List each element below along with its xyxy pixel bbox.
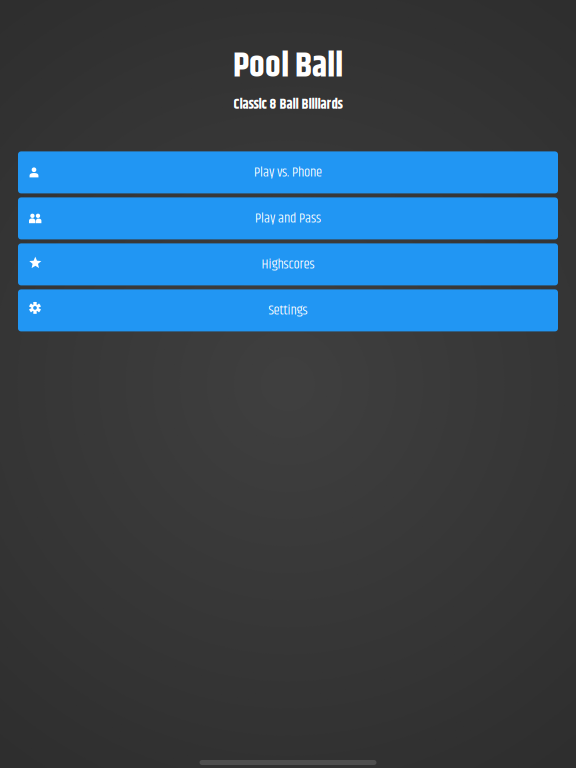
staticText: Highscores	[261, 254, 314, 275]
button[interactable]: Settings	[18, 289, 558, 331]
staticText: Settings	[268, 300, 307, 321]
staticText: Play and Pass	[255, 208, 321, 229]
button[interactable]: Highscores	[18, 243, 558, 285]
staticText: Classic 8 Ball Billiards	[233, 94, 342, 115]
button[interactable]: Play vs. Phone	[18, 151, 558, 193]
button[interactable]: Play and Pass	[18, 197, 558, 239]
staticText: Pool Ball	[233, 40, 343, 93]
staticText: Play vs. Phone	[254, 162, 322, 183]
